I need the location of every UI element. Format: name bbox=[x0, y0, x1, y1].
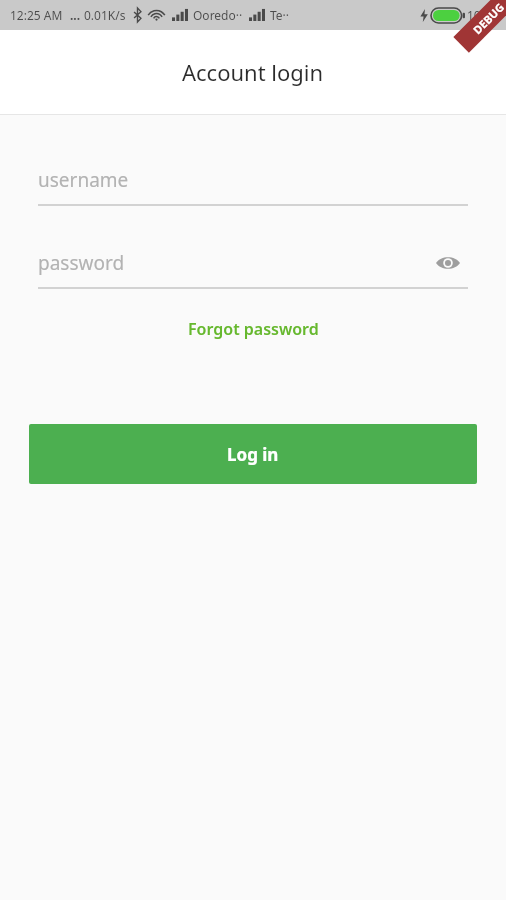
staticText: ... bbox=[70, 7, 81, 23]
staticText: Te·· bbox=[270, 7, 290, 23]
button[interactable]: Forgot password bbox=[0, 312, 506, 346]
staticText: DEBUG bbox=[470, 0, 506, 37]
staticText: Ooredo·· bbox=[193, 7, 243, 23]
button[interactable]: username bbox=[38, 156, 468, 204]
button[interactable]: Show password bbox=[428, 243, 468, 283]
staticText: Forgot password bbox=[188, 318, 319, 340]
staticText: Account login bbox=[182, 57, 324, 87]
staticText: 100% bbox=[467, 7, 498, 23]
staticText: Log in bbox=[227, 443, 279, 466]
staticText: 12:25 AM bbox=[10, 7, 63, 23]
staticText: password bbox=[38, 250, 125, 276]
button[interactable]: password bbox=[38, 239, 468, 287]
staticText: 0.01K/s bbox=[84, 7, 126, 23]
staticText: username bbox=[38, 167, 129, 193]
button[interactable]: Log in bbox=[29, 424, 477, 484]
